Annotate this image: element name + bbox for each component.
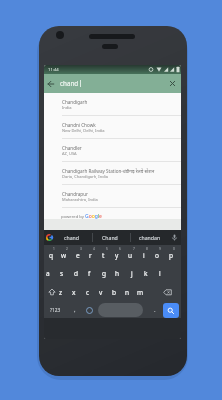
button[interactable]: v (94, 284, 107, 300)
button[interactable]: j (125, 265, 138, 281)
button[interactable]: m (134, 284, 147, 300)
staticText: n (125, 288, 130, 297)
staticText: g (102, 269, 106, 278)
button[interactable]: w (57, 247, 70, 263)
button[interactable]: Chandrapur (44, 185, 181, 207)
staticText: s (60, 269, 64, 278)
button[interactable]: Chandigarh Railway Station-चंडीगढ़ रेलवे… (44, 162, 181, 184)
button[interactable]: q (44, 247, 57, 263)
button[interactable]: h (111, 265, 124, 281)
button[interactable]: y (110, 247, 123, 263)
button[interactable]: r (84, 247, 97, 263)
button[interactable]: p (164, 247, 177, 263)
staticText: Chand (102, 234, 118, 241)
staticText: j (131, 269, 133, 278)
button[interactable]: l (153, 265, 166, 281)
staticText: k (144, 269, 148, 278)
staticText: chandan (139, 234, 161, 241)
staticText: 1 (53, 247, 55, 251)
staticText: chand (64, 234, 80, 241)
staticText: c (86, 288, 90, 297)
button[interactable] (169, 80, 176, 87)
button[interactable] (98, 303, 143, 317)
button[interactable] (171, 234, 178, 241)
staticText: Chandler (62, 145, 82, 151)
button[interactable] (163, 303, 179, 318)
staticText: z (59, 288, 63, 297)
staticText: u (128, 251, 133, 260)
staticText: New Delhi, Delhi, India (62, 128, 105, 133)
button[interactable]: Chandni Chowk (44, 116, 181, 138)
button[interactable] (45, 284, 58, 300)
staticText: powered by Google (61, 213, 102, 220)
button[interactable]: c (81, 284, 94, 300)
staticText: p (169, 251, 173, 260)
staticText: d (74, 269, 78, 278)
button[interactable]: e (71, 247, 84, 263)
staticText: 9 (159, 247, 161, 251)
button[interactable]: n (121, 284, 134, 300)
button[interactable]: , (69, 302, 81, 318)
staticText: f (88, 269, 91, 278)
staticText: Chandni Chowk (62, 122, 96, 128)
staticText: Chandigarh Railway Station-चंडीगढ़ रेलवे… (62, 168, 155, 174)
button[interactable]: o (150, 247, 163, 263)
staticText: y (115, 251, 119, 260)
staticText: 7 (133, 247, 135, 251)
button[interactable]: b (107, 284, 120, 300)
staticText: , (74, 306, 76, 314)
staticText: AZ, USA (62, 151, 77, 156)
staticText: 0 (173, 247, 175, 251)
staticText: Chandigarh (62, 99, 88, 105)
staticText: 8 (146, 247, 148, 251)
staticText: v (99, 288, 103, 297)
staticText: 6 (119, 247, 121, 251)
staticText: Chandrapur (62, 191, 88, 197)
staticText: m (137, 288, 144, 297)
button[interactable] (83, 302, 96, 318)
staticText: e (76, 251, 80, 260)
staticText: x (72, 288, 76, 297)
staticText: . (154, 306, 156, 314)
button[interactable]: chand (58, 230, 86, 245)
staticText: i (143, 251, 145, 260)
staticText: 3 (80, 247, 82, 251)
button[interactable]: i (137, 247, 150, 263)
button[interactable]: . (149, 302, 161, 318)
staticText: 4 (93, 247, 95, 251)
button[interactable]: u (124, 247, 137, 263)
staticText: r (89, 251, 92, 260)
staticText: o (155, 251, 159, 260)
button[interactable]: chandan (132, 230, 167, 245)
button[interactable] (46, 234, 53, 241)
button[interactable]: x (67, 284, 80, 300)
staticText: Daria, Chandigarh, India (62, 174, 108, 179)
button[interactable]: d (69, 265, 82, 281)
button[interactable] (47, 80, 55, 88)
staticText: chand (60, 79, 79, 88)
staticText: l (159, 269, 161, 278)
staticText: a (46, 269, 50, 278)
staticText: w (61, 251, 67, 260)
button[interactable]: f (83, 265, 96, 281)
button[interactable]: k (139, 265, 152, 281)
button[interactable] (159, 284, 175, 300)
staticText: India (62, 105, 72, 110)
staticText: 5 (106, 247, 108, 251)
button[interactable]: a (44, 265, 54, 281)
button[interactable]: Chand (93, 230, 127, 245)
staticText: ?123 (50, 307, 61, 314)
button[interactable]: ?123 (46, 302, 64, 318)
button[interactable]: Chandler (44, 139, 181, 161)
button[interactable]: s (55, 265, 68, 281)
button[interactable]: t (97, 247, 110, 263)
button[interactable]: g (97, 265, 110, 281)
staticText: 2 (66, 247, 68, 251)
staticText: t (102, 251, 105, 260)
button[interactable]: z (54, 284, 67, 300)
button[interactable]: Chandigarh (44, 93, 181, 115)
staticText: b (112, 288, 116, 297)
staticText: q (49, 251, 53, 260)
staticText: 11:44 (48, 67, 59, 73)
staticText: Maharashtra, India (62, 197, 98, 202)
